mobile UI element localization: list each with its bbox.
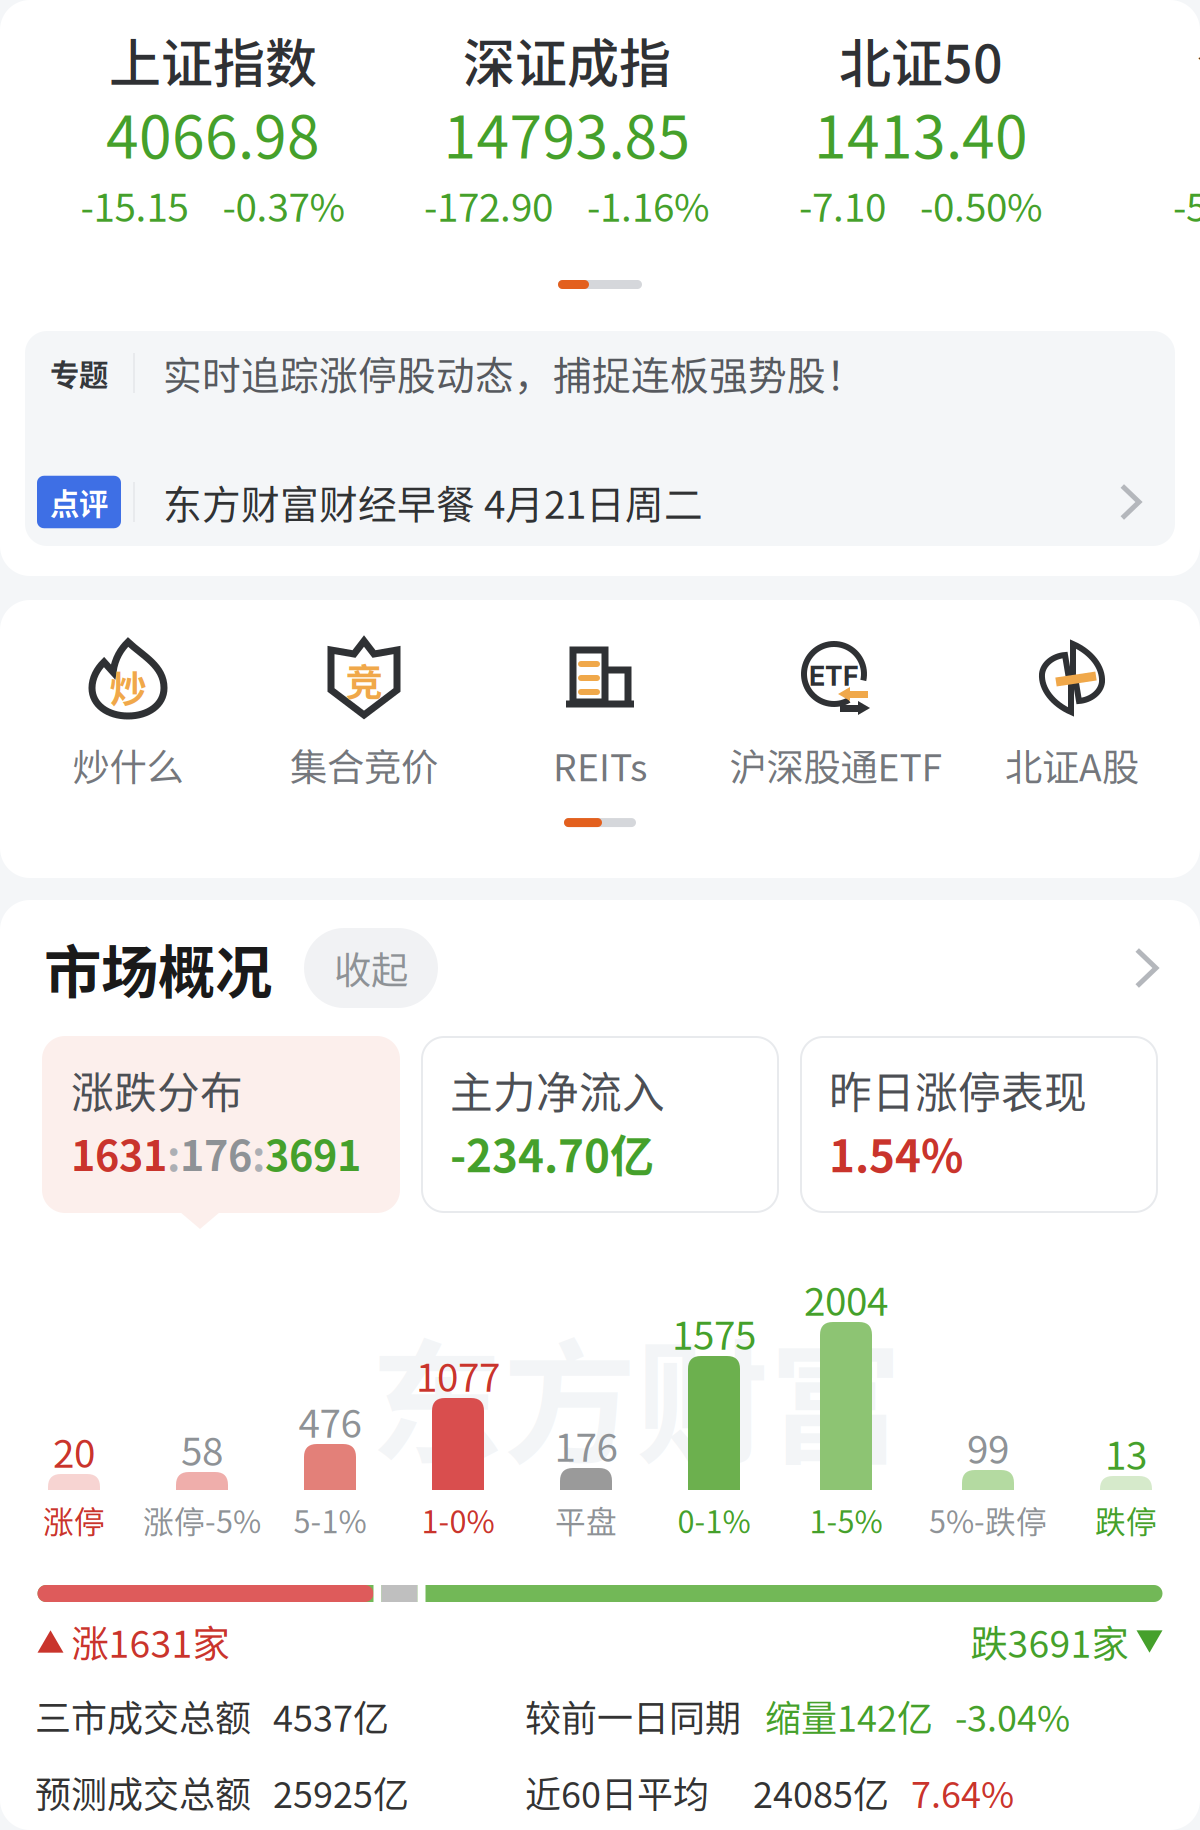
staticText: 176	[180, 1123, 252, 1183]
staticText: 1077	[416, 1347, 500, 1403]
button[interactable]: REITs	[482, 638, 718, 792]
staticText: 5%-跌停	[929, 1498, 1047, 1542]
staticText: 1-5%	[809, 1498, 882, 1542]
staticText: 市场概况	[44, 926, 272, 1009]
staticText: 涨跌分布	[71, 1059, 243, 1121]
button[interactable]: 深证成指	[424, 26, 710, 238]
staticText: 476	[298, 1393, 361, 1449]
staticText: :	[167, 1123, 180, 1183]
staticText: 1413.40	[814, 90, 1028, 175]
staticText: 竞	[345, 653, 382, 707]
staticText: :	[252, 1123, 265, 1183]
staticText: 集合竞价	[290, 738, 438, 792]
staticText: 昨日涨停表现	[829, 1059, 1087, 1121]
staticText: -0.37%	[222, 177, 345, 233]
staticText: 涨1631家	[71, 1614, 229, 1669]
staticText: 近60日平均	[525, 1766, 709, 1818]
staticText: 3691	[265, 1123, 361, 1183]
button[interactable]: ETF	[718, 638, 954, 792]
staticText: 24085亿	[753, 1766, 889, 1818]
staticText: 北证A股	[1005, 738, 1139, 792]
staticText: 点评	[50, 481, 108, 523]
staticText: 预测成交总额	[35, 1766, 251, 1818]
staticText: 1575	[672, 1305, 756, 1361]
staticText: 1631	[71, 1123, 167, 1183]
staticText: 涨停-5%	[143, 1498, 261, 1542]
staticText: 炒	[109, 660, 146, 714]
staticText: 176	[554, 1417, 617, 1473]
button[interactable]: 点评	[25, 458, 1175, 546]
staticText: 7.64%	[911, 1766, 1014, 1818]
staticText: 收起	[334, 941, 408, 995]
button[interactable]: 收起	[304, 928, 438, 1008]
staticText: 58	[181, 1421, 223, 1477]
staticText: -0.50%	[920, 177, 1043, 233]
button[interactable]: 上证指数	[80, 26, 345, 238]
staticText: 5-1%	[293, 1498, 366, 1542]
staticText: ETF	[809, 660, 859, 692]
staticText: 东方财富	[370, 1297, 902, 1491]
staticText: 跌3691家	[970, 1614, 1128, 1669]
staticText: 主力净流入	[450, 1059, 665, 1121]
staticText: -52.	[1173, 177, 1200, 233]
staticText: -234.70亿	[450, 1121, 654, 1185]
staticText: 2004	[804, 1271, 888, 1327]
staticText: 4066.98	[106, 90, 320, 175]
button[interactable]: 竞	[246, 638, 482, 792]
staticText: 1.54%	[829, 1121, 963, 1185]
staticText: 东方财富财经早餐 4月21日周二	[163, 474, 703, 530]
staticText: 实时追踪涨停股动态，捕捉连板强势股！	[163, 345, 865, 401]
staticText: 较前一日同期	[525, 1690, 741, 1742]
button[interactable]: 北证50	[799, 26, 1043, 238]
staticText: -1.16%	[587, 177, 710, 233]
staticText: 99	[967, 1419, 1009, 1475]
staticText: 0-1%	[677, 1498, 750, 1542]
staticText: 25925亿	[273, 1766, 409, 1818]
staticText: 14793.85	[443, 90, 690, 175]
staticText: -3.04%	[955, 1690, 1070, 1742]
staticText: 专题	[50, 352, 108, 394]
staticText: REITs	[553, 738, 647, 792]
button[interactable]: 北证A股	[954, 638, 1190, 792]
staticText: 沪深股通ETF	[729, 738, 942, 792]
button[interactable]: 主力净流入	[422, 1037, 778, 1212]
staticText: 涨停	[43, 1498, 105, 1542]
staticText: -172.90	[424, 177, 553, 233]
staticText: -15.15	[80, 177, 188, 233]
button[interactable]: 炒	[10, 638, 246, 792]
staticText: 跌停	[1095, 1498, 1157, 1542]
staticText: 北证50	[839, 22, 1003, 98]
staticText: 平盘	[555, 1498, 617, 1542]
staticText: 20	[53, 1423, 95, 1479]
button[interactable]: 涨跌分布	[43, 1037, 399, 1212]
button[interactable]: 更多	[1135, 948, 1200, 988]
button[interactable]: 专题	[25, 331, 1175, 415]
staticText: 缩量142亿	[765, 1690, 933, 1742]
button[interactable]: 昨日涨停表现	[801, 1037, 1157, 1212]
staticText: -7.10	[799, 177, 886, 233]
staticText: 上证指数	[109, 22, 317, 98]
staticText: 1-0%	[421, 1498, 494, 1542]
button[interactable]: 仓	[1173, 26, 1200, 238]
staticText: 炒什么	[72, 738, 183, 792]
staticText: 深证成指	[463, 22, 671, 98]
staticText: 仓	[1197, 22, 1200, 98]
staticText: 4537亿	[273, 1690, 389, 1742]
staticText: 13	[1105, 1425, 1147, 1481]
staticText: 三市成交总额	[35, 1690, 251, 1742]
